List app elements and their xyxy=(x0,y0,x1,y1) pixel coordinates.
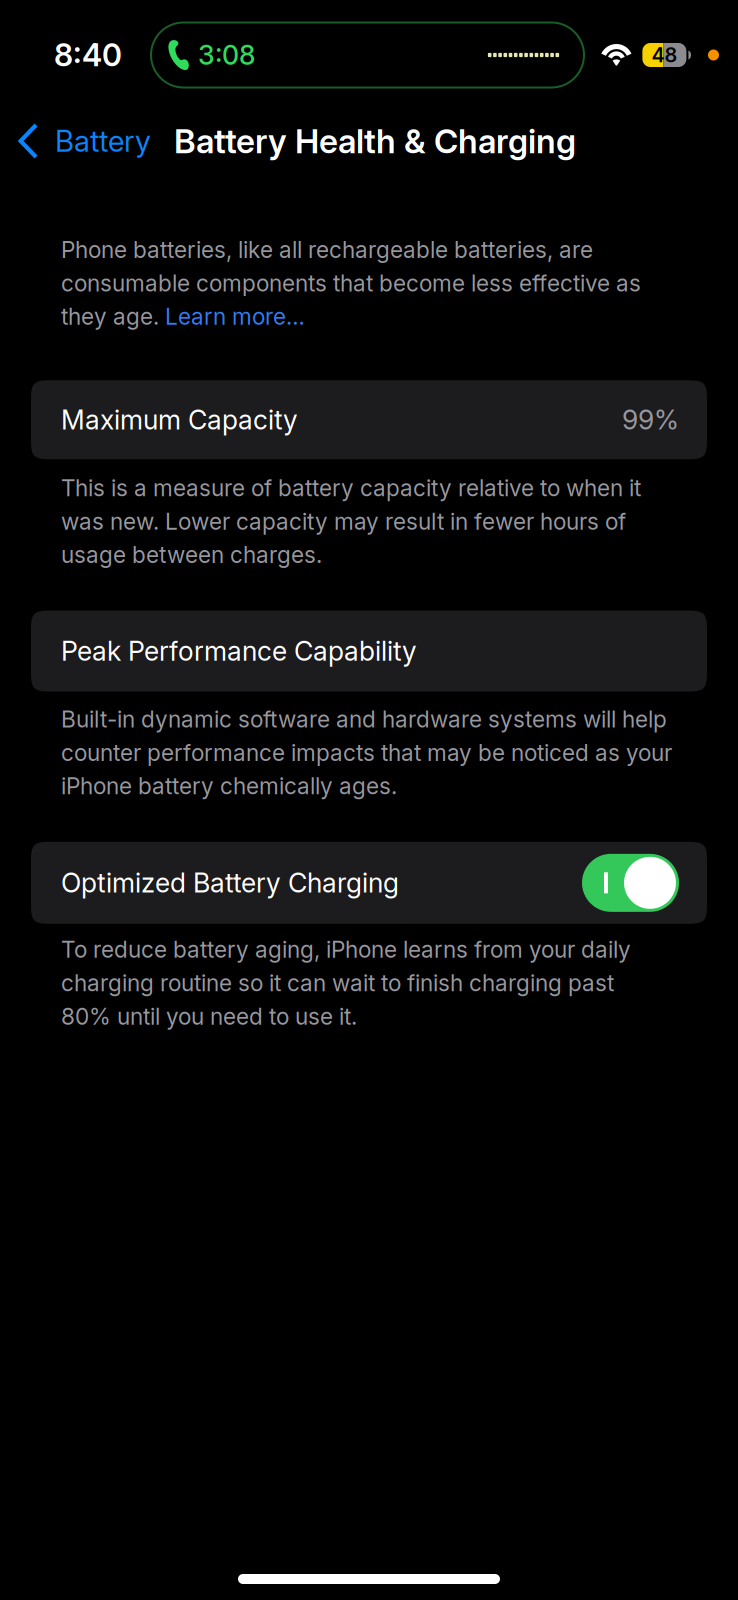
staticText: Peak Performance Capability xyxy=(61,635,417,667)
staticText: Phone batteries, like all rechargeable b… xyxy=(61,236,641,330)
staticText: Built-in dynamic software and hardware s… xyxy=(61,706,672,800)
staticText: Maximum Capacity xyxy=(61,404,298,436)
staticText: Battery xyxy=(55,123,151,159)
button[interactable]: Optimized Battery Charging xyxy=(582,854,679,912)
staticText: 48 xyxy=(651,43,677,67)
staticText: 3:08 xyxy=(198,39,255,71)
staticText: This is a measure of battery capacity re… xyxy=(61,474,641,569)
button[interactable]: Peak Performance Capability xyxy=(0,611,707,692)
staticText: 8:40 xyxy=(54,36,122,73)
staticText: Battery Health & Charging xyxy=(174,121,576,161)
staticText: To reduce battery aging, iPhone learns f… xyxy=(61,936,631,1030)
staticText: 99% xyxy=(622,404,679,436)
button[interactable]: Battery xyxy=(0,113,151,169)
staticText: Optimized Battery Charging xyxy=(61,867,399,899)
